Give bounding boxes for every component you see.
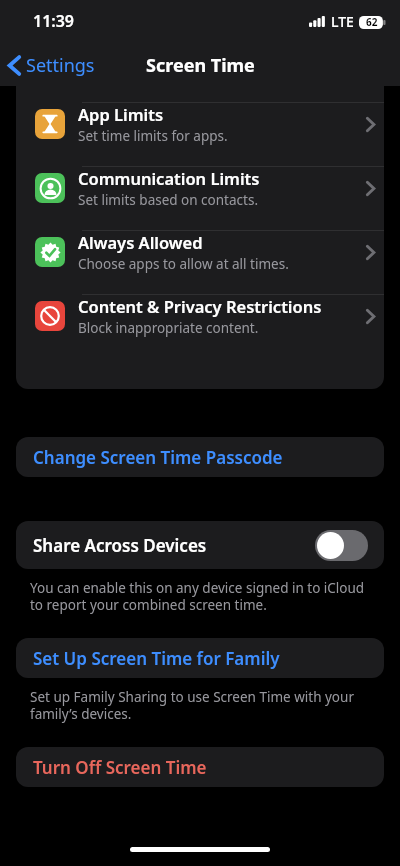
staticText: Settings xyxy=(26,53,95,78)
button[interactable]: Downtime xyxy=(16,86,384,103)
staticText: Change Screen Time Passcode xyxy=(33,446,283,469)
staticText: App Limits xyxy=(78,103,164,125)
staticText: Screen Time xyxy=(146,53,255,78)
button[interactable]: Share Across Devices xyxy=(16,521,384,569)
staticText: Block inappropriate content. xyxy=(78,319,259,337)
button[interactable]: Always Allowed xyxy=(16,231,384,295)
staticText: You can enable this on any device signed… xyxy=(30,579,366,614)
staticText: Set time limits for apps. xyxy=(78,127,228,145)
staticText: Always Allowed xyxy=(78,231,203,253)
button[interactable]: Share Across Devices toggle xyxy=(315,530,368,561)
staticText: Communication Limits xyxy=(78,167,260,189)
staticText: Turn Off Screen Time xyxy=(33,756,207,779)
staticText: Content & Privacy Restrictions xyxy=(78,295,322,317)
button[interactable]: Settings xyxy=(0,49,105,82)
button[interactable]: Change Screen Time Passcode xyxy=(16,437,384,477)
staticText: Set Up Screen Time for Family xyxy=(33,647,280,670)
staticText: 62 xyxy=(366,15,378,29)
button[interactable]: Content & Privacy Restrictions xyxy=(16,295,384,342)
button[interactable]: App Limits xyxy=(16,103,384,167)
button[interactable]: Turn Off Screen Time xyxy=(16,747,384,787)
staticText: 11:39 xyxy=(33,10,75,32)
staticText: Set limits based on contacts. xyxy=(78,191,258,209)
button[interactable]: Communication Limits xyxy=(16,167,384,231)
staticText: Set up Family Sharing to use Screen Time… xyxy=(30,688,366,723)
button[interactable]: Set Up Screen Time for Family xyxy=(16,638,384,678)
staticText: LTE xyxy=(331,12,354,31)
staticText: Choose apps to allow at all times. xyxy=(78,255,289,273)
staticText: Share Across Devices xyxy=(33,534,207,557)
